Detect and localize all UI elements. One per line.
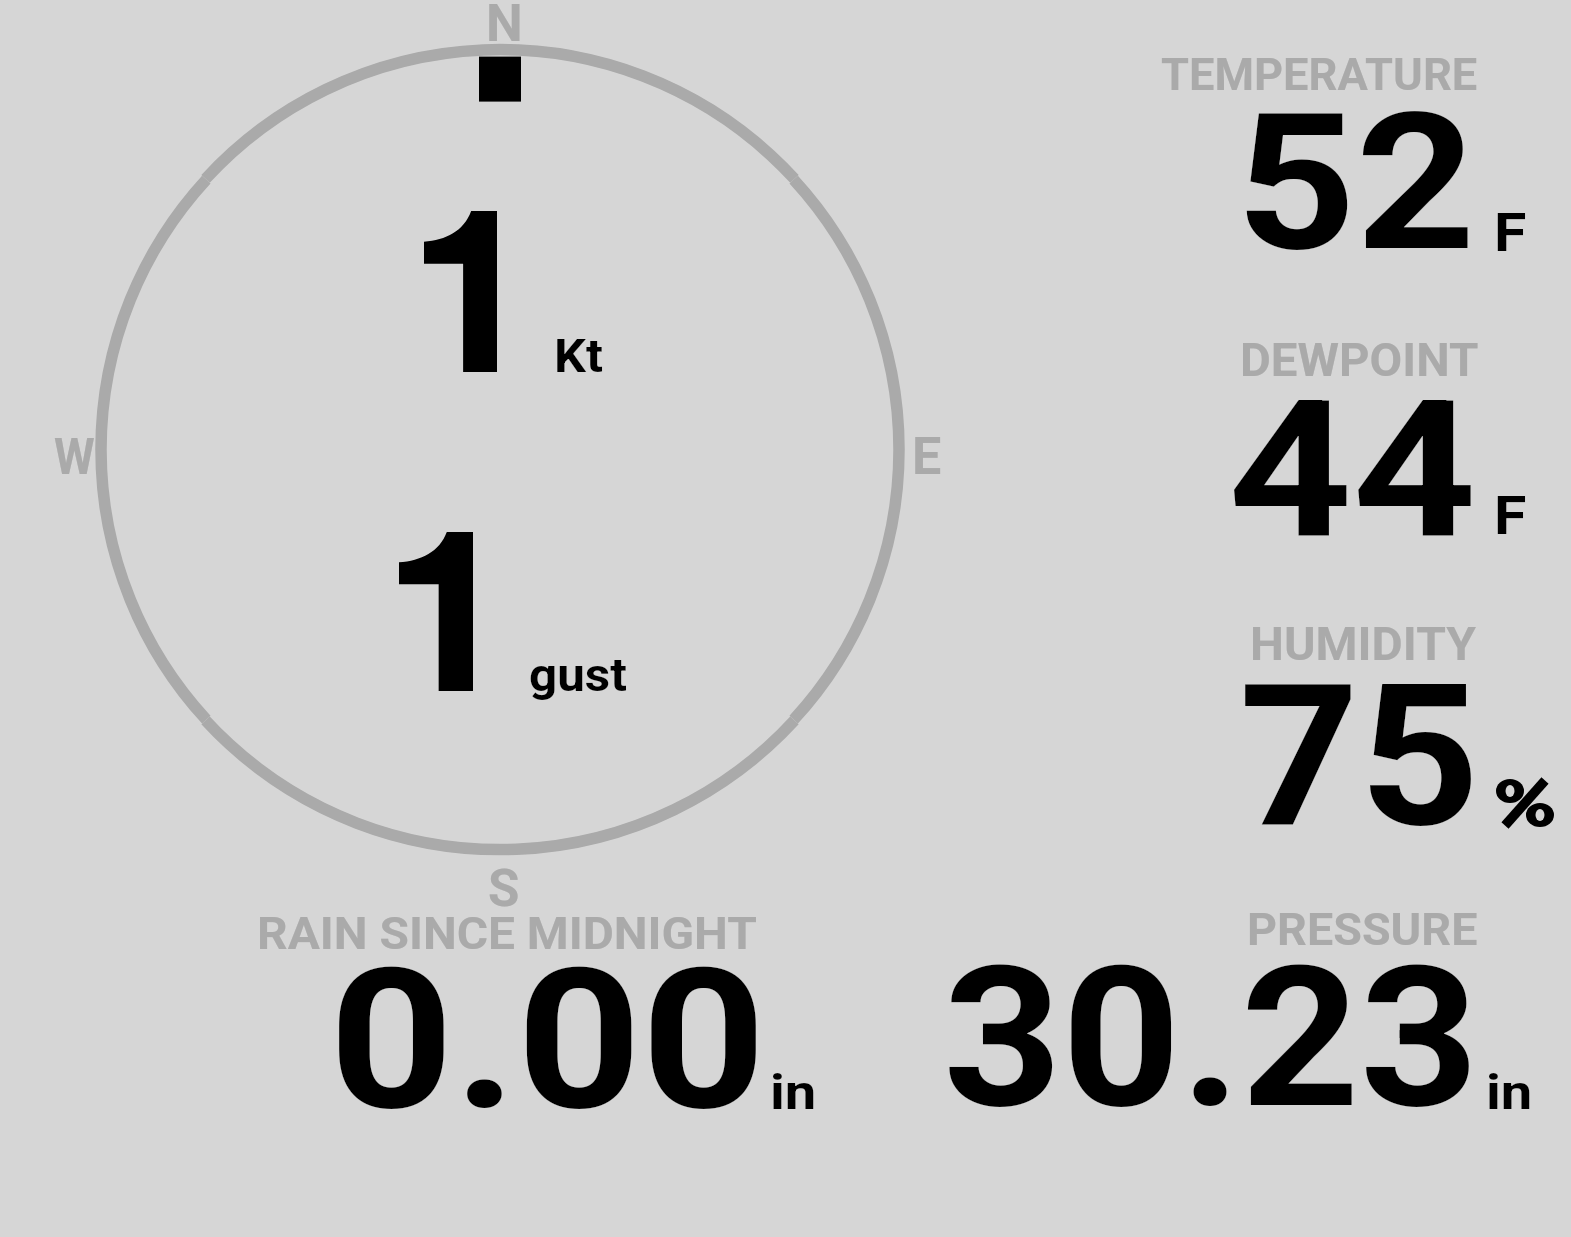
staticText: 30.23 [943,925,1479,1152]
staticText: W [54,428,95,487]
staticText: S [488,859,520,919]
staticText: N [486,0,523,54]
button[interactable]: Humidity 75 percent [1150,610,1550,840]
button[interactable]: Dewpoint 44 degrees Fahrenheit [1150,325,1550,555]
staticText: 0.00 [329,927,767,1154]
staticText: gust [529,647,628,702]
staticText: PRESSURE [1247,904,1478,956]
staticText: E [912,426,942,487]
button[interactable]: Temperature 52 degrees Fahrenheit [1150,40,1550,270]
button[interactable]: Pressure 30.23 inches [930,895,1550,1130]
button[interactable]: Wind direction and speed dial [100,50,900,850]
staticText: F [1494,200,1526,264]
staticText: in [1486,1064,1533,1120]
staticText: F [1494,483,1526,547]
staticText: in [770,1064,817,1120]
staticText: 44 [1228,359,1478,582]
button[interactable]: Rain since midnight 0.00 inches [250,895,830,1130]
staticText: Kt [554,329,604,383]
staticText: 52 [1236,73,1476,294]
staticText: DEWPOINT [1240,333,1479,387]
staticText: TEMPERATURE [1161,48,1478,101]
staticText: HUMIDITY [1250,618,1477,671]
staticText: RAIN SINCE MIDNIGHT [257,907,758,960]
staticText: 75 [1239,642,1480,872]
